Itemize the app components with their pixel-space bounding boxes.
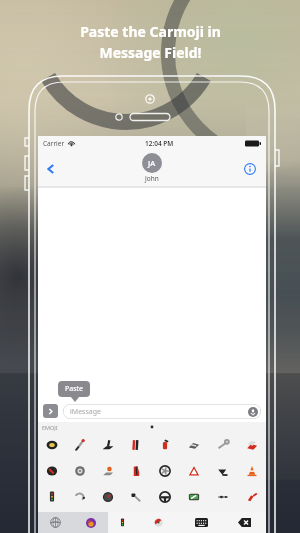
button[interactable]: Carmoji set (137, 512, 180, 533)
button[interactable] (94, 484, 122, 510)
button[interactable] (208, 484, 237, 510)
button[interactable] (150, 432, 179, 458)
button[interactable] (179, 432, 208, 458)
staticText: Paste the Carmoji in (80, 22, 221, 41)
button[interactable] (38, 458, 66, 484)
button[interactable]: Paste (58, 381, 90, 397)
staticText: John (145, 174, 159, 183)
button[interactable] (208, 432, 237, 458)
button[interactable]: Back (42, 157, 60, 181)
button[interactable]: Keyboard (180, 512, 223, 533)
button[interactable] (94, 458, 122, 484)
staticText: iMessage (70, 407, 101, 417)
button[interactable]: iMessage (63, 404, 261, 419)
button[interactable]: Carmoji (108, 512, 137, 533)
button[interactable] (122, 484, 150, 510)
button[interactable] (237, 484, 266, 510)
button[interactable]: Emoji keyboard (73, 512, 108, 533)
button[interactable] (237, 458, 266, 484)
button[interactable]: JA (142, 153, 162, 183)
button[interactable]: Dictate (248, 407, 258, 417)
button[interactable]: Change keyboard (38, 512, 73, 533)
button[interactable] (122, 458, 150, 484)
button[interactable] (66, 432, 94, 458)
button[interactable] (38, 484, 66, 510)
staticText: Paste (65, 384, 83, 394)
button[interactable] (94, 432, 122, 458)
staticText: JA (148, 158, 156, 168)
button[interactable] (208, 458, 237, 484)
staticText: Carrier (43, 139, 65, 148)
button[interactable] (179, 458, 208, 484)
button[interactable] (150, 458, 179, 484)
button[interactable] (150, 484, 179, 510)
staticText: Message Field! (99, 43, 202, 62)
button[interactable] (66, 458, 94, 484)
button[interactable] (38, 432, 66, 458)
staticText: EMOJI (42, 424, 58, 431)
button[interactable] (179, 484, 208, 510)
button[interactable] (122, 432, 150, 458)
button[interactable]: Apps (43, 404, 58, 418)
button[interactable]: Details (239, 158, 261, 180)
button[interactable] (66, 484, 94, 510)
button[interactable]: Delete (223, 512, 266, 533)
staticText: 12:04 PM (145, 139, 174, 148)
button[interactable] (237, 432, 266, 458)
